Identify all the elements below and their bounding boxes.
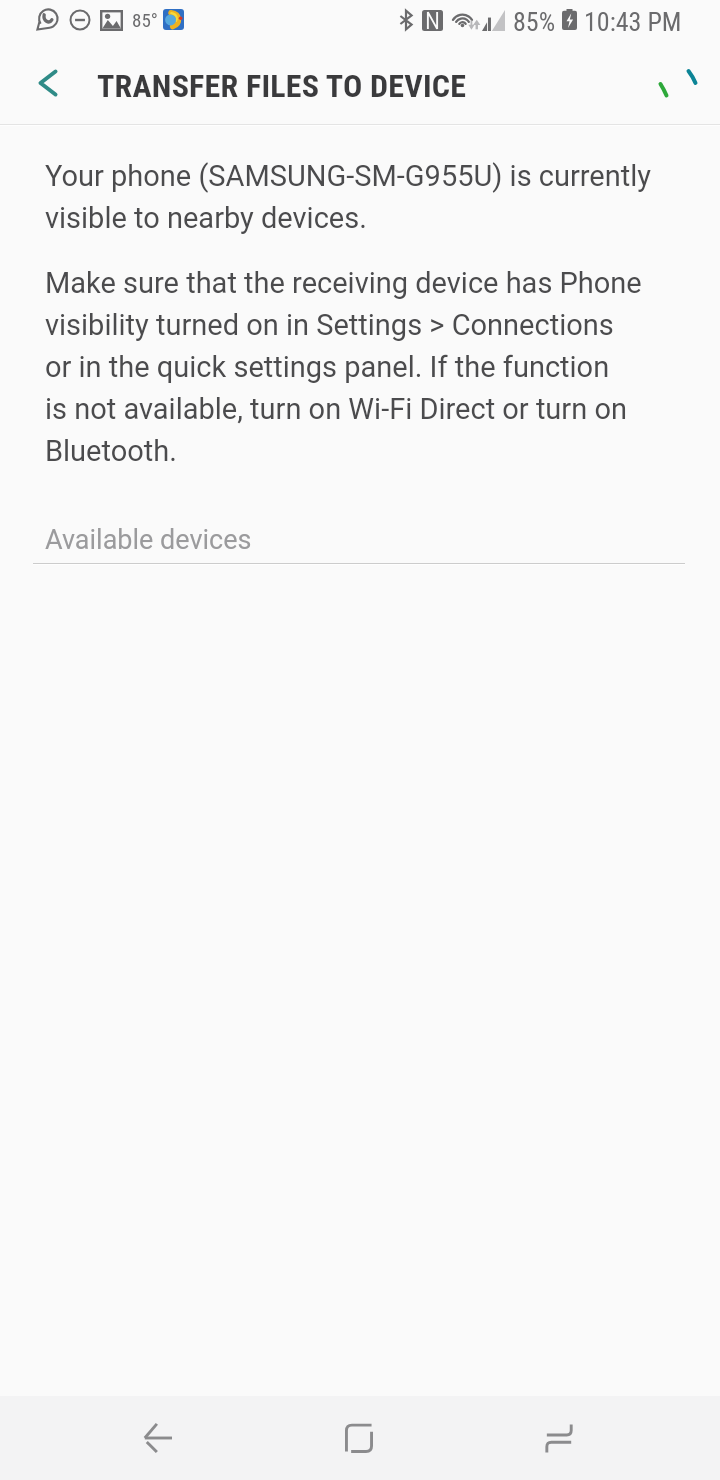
- staticText: 10:43 PM: [584, 7, 682, 37]
- button[interactable]: Scanning for nearby devices: [632, 54, 708, 130]
- button[interactable]: Back: [58, 1396, 258, 1480]
- staticText: 85%: [513, 7, 556, 37]
- staticText: Your phone (SAMSUNG-SM-G955U) is current…: [45, 153, 651, 237]
- button[interactable]: Navigate up: [22, 57, 74, 109]
- staticText: 85°: [132, 9, 158, 31]
- staticText: Available devices: [45, 524, 252, 556]
- button[interactable]: Recent apps: [460, 1396, 660, 1480]
- button[interactable]: Home: [259, 1396, 459, 1480]
- staticText: TRANSFER FILES TO DEVICE: [97, 67, 467, 105]
- staticText: Make sure that the receiving device has …: [45, 260, 642, 470]
